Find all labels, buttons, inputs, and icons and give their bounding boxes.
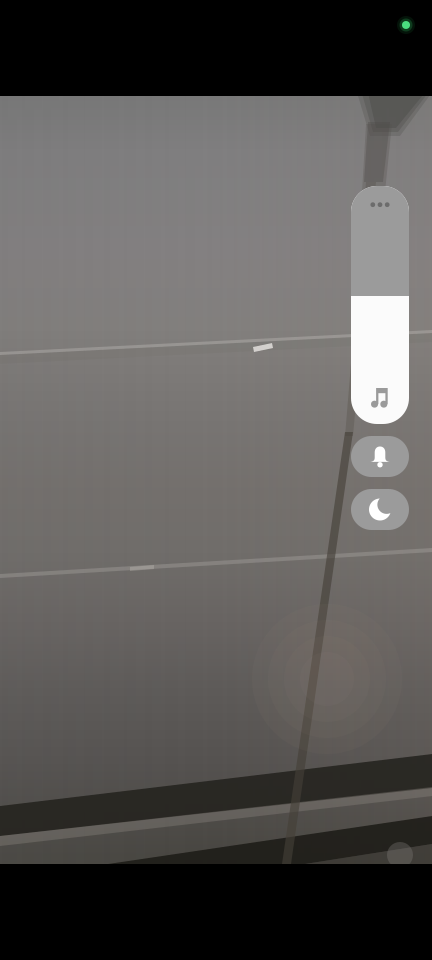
button[interactable]: Volume — [351, 186, 409, 424]
button[interactable]: Do Not Disturb — [351, 489, 409, 530]
button[interactable]: Ringer — [351, 436, 409, 477]
